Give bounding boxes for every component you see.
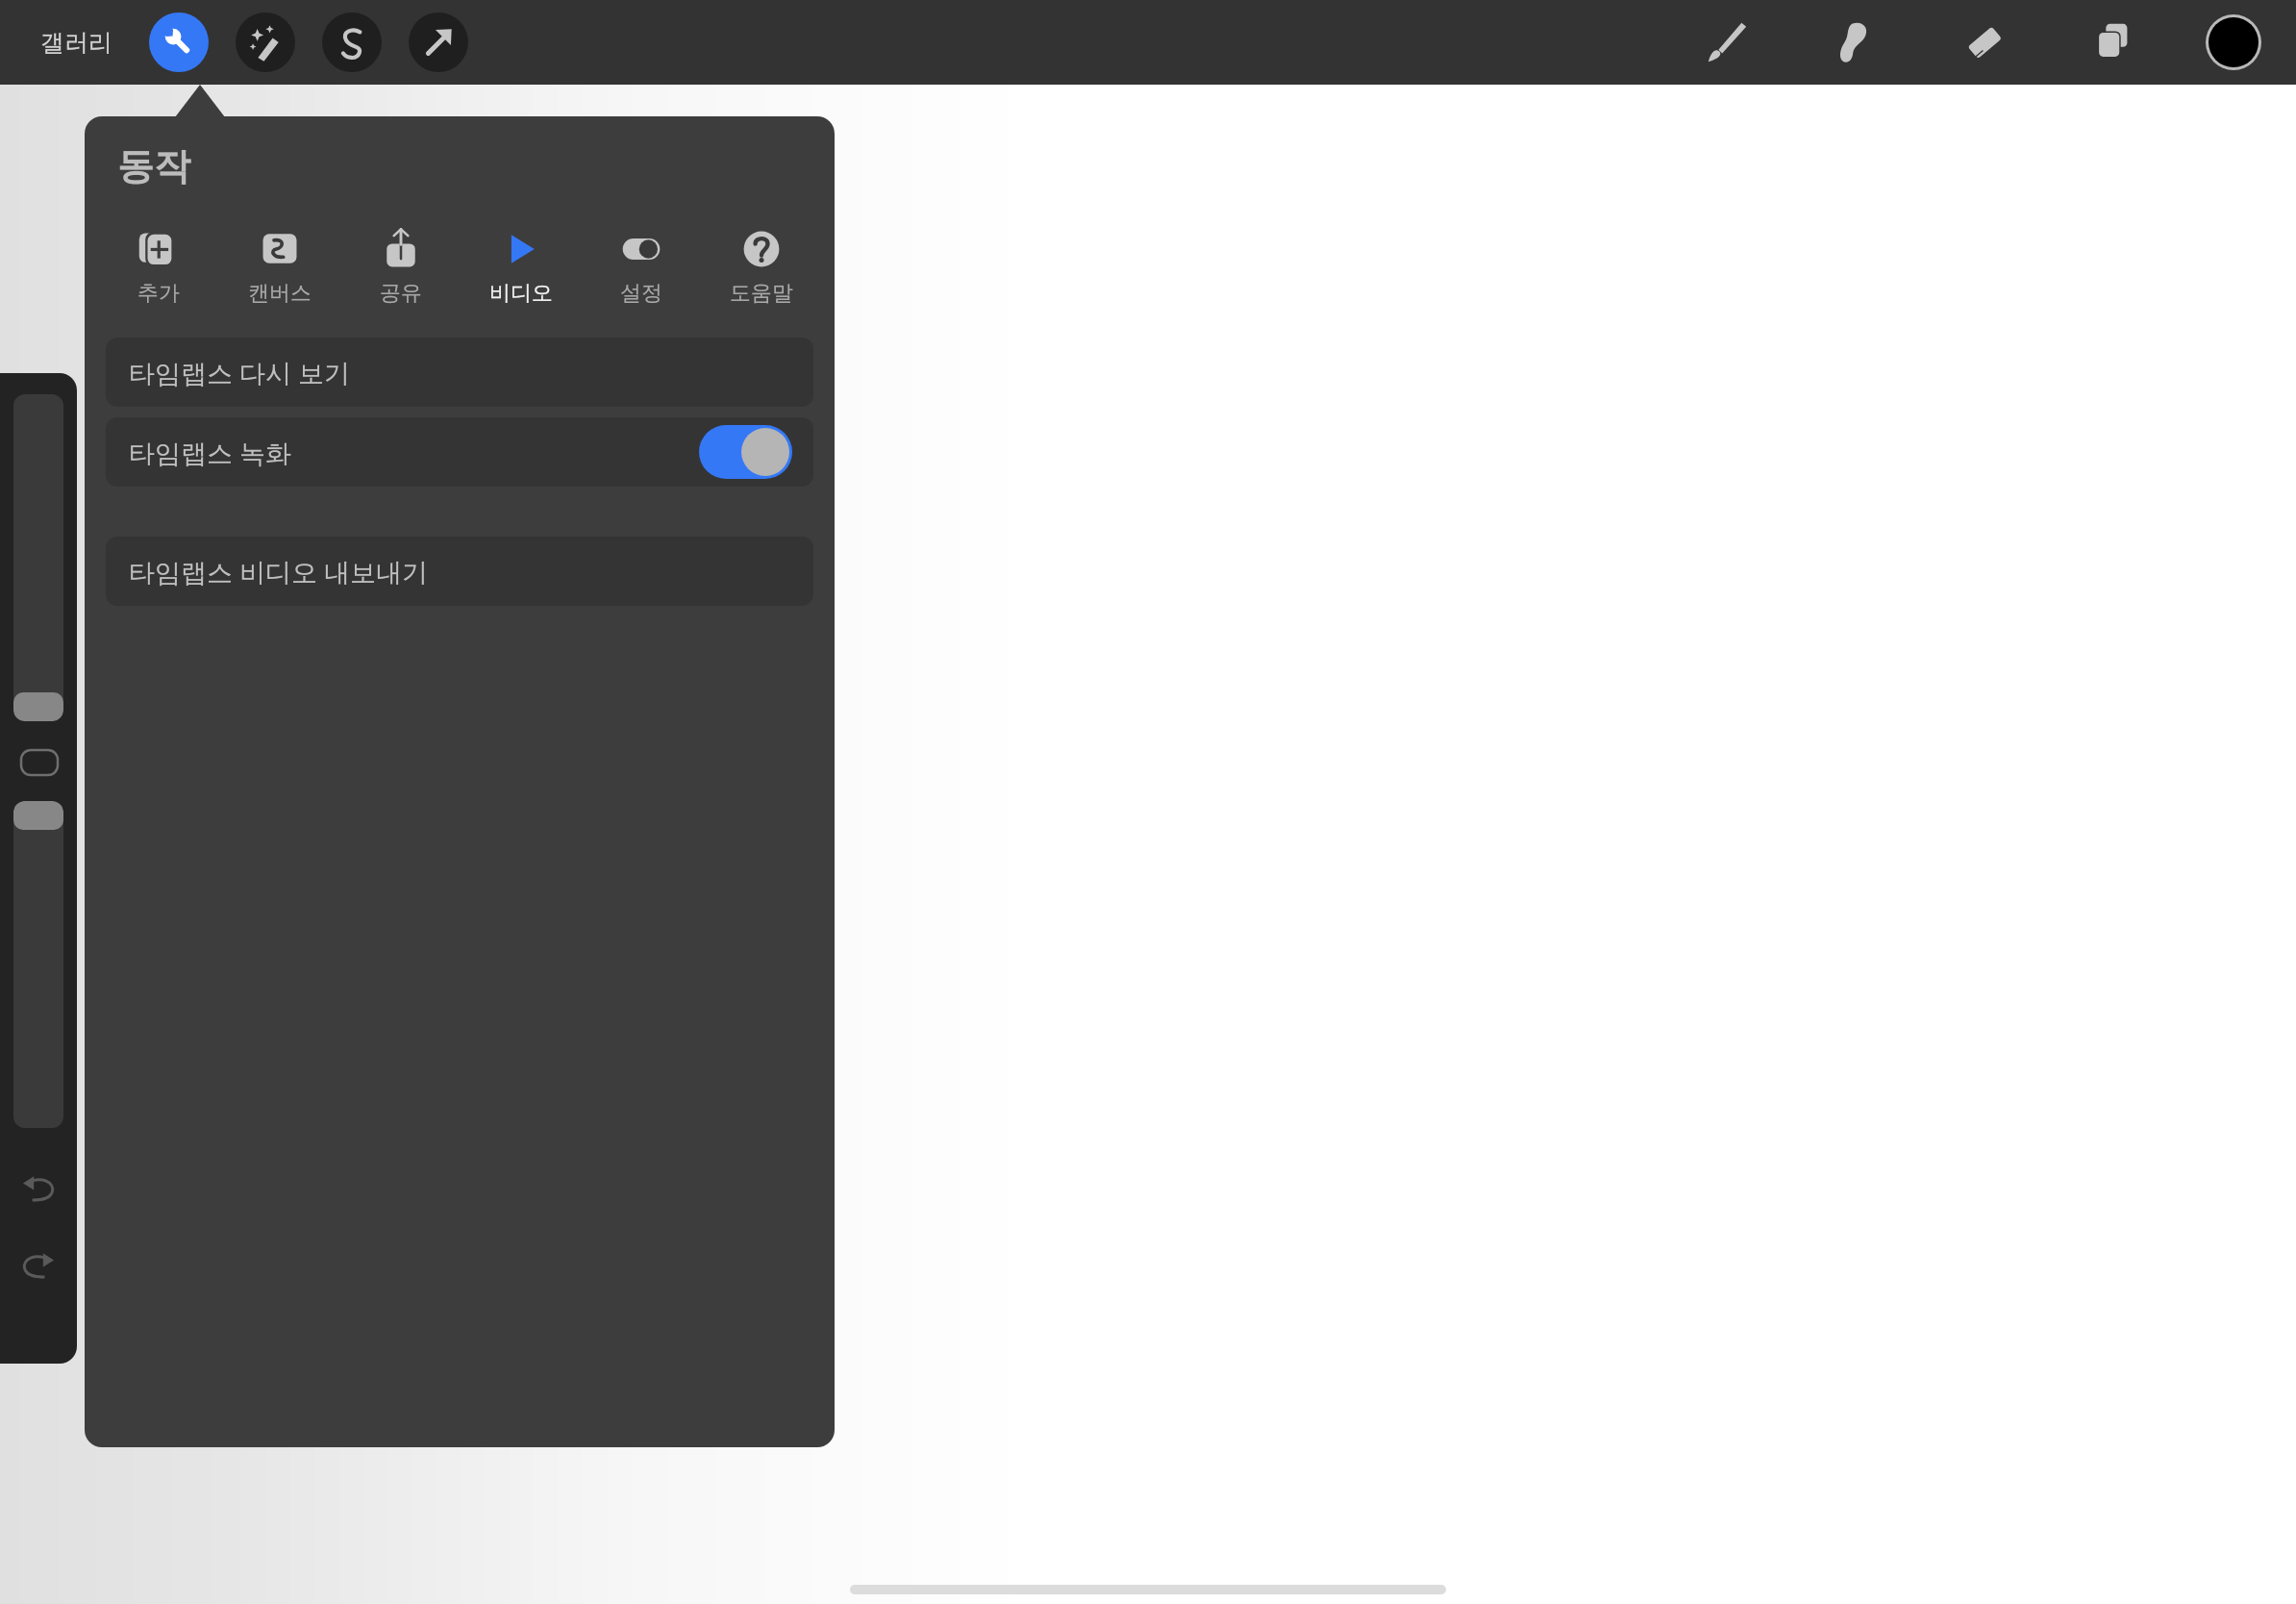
button[interactable]: 타임랩스 다시 보기 <box>106 338 813 407</box>
button[interactable]: 추가 <box>98 222 219 311</box>
button[interactable]: 타임랩스 녹화 <box>106 417 813 487</box>
button[interactable]: 갤러리 <box>29 22 124 63</box>
staticText: 타임랩스 다시 보기 <box>129 355 351 390</box>
button[interactable]: Brush size <box>13 394 63 721</box>
staticText: 갤러리 <box>40 28 112 58</box>
button[interactable]: Undo <box>13 1164 63 1214</box>
button[interactable]: Redo <box>13 1241 63 1291</box>
button[interactable]: Paint <box>1696 12 1758 73</box>
staticText: 도움말 <box>730 280 793 307</box>
button[interactable]: 공유 <box>340 222 461 311</box>
staticText: 비디오 <box>489 280 553 307</box>
button[interactable]: 캔버스 <box>219 222 340 311</box>
button[interactable]: 타임랩스 비디오 내보내기 <box>106 537 813 606</box>
button[interactable]: Modify <box>21 750 58 775</box>
staticText: 설정 <box>620 280 662 307</box>
button[interactable]: Selection <box>322 13 382 72</box>
staticText: 추가 <box>137 280 180 307</box>
staticText: 타임랩스 비디오 내보내기 <box>129 554 429 589</box>
staticText: 동작 <box>117 143 190 189</box>
button[interactable]: 설정 <box>581 222 701 311</box>
button[interactable]: Layers <box>2083 12 2144 73</box>
staticText: 공유 <box>380 280 422 307</box>
staticText: 타임랩스 녹화 <box>129 435 292 470</box>
button[interactable]: Erase <box>1954 12 2015 73</box>
staticText: 캔버스 <box>248 280 312 307</box>
button[interactable]: Smudge <box>1825 12 1886 73</box>
button[interactable]: Toggle 타임랩스 녹화 <box>699 425 792 479</box>
button[interactable]: Adjustments <box>236 13 295 72</box>
button[interactable]: Color <box>2204 13 2263 72</box>
button[interactable]: Brush opacity <box>13 801 63 1128</box>
button[interactable]: 비디오 <box>461 222 581 311</box>
button[interactable]: 도움말 <box>701 222 821 311</box>
button[interactable]: Transform <box>409 13 468 72</box>
button[interactable]: Actions <box>149 13 209 72</box>
